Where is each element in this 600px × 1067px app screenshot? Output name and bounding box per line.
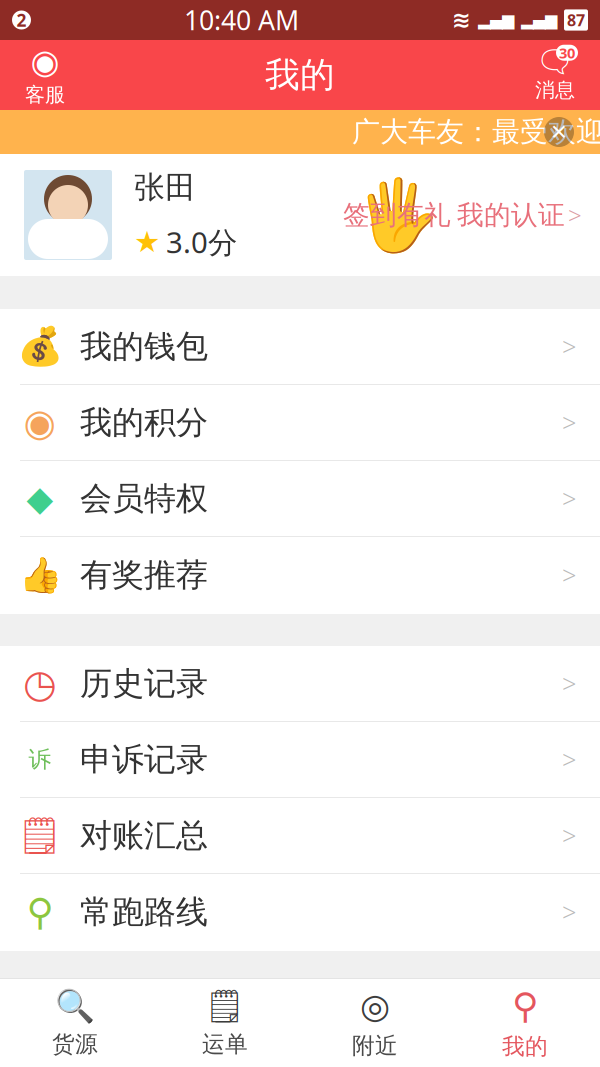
button[interactable]: 诉 [0, 722, 600, 798]
button[interactable]: 关闭 [544, 117, 574, 147]
staticText: 诉 [28, 746, 51, 773]
staticText: 对账汇总 [80, 816, 208, 855]
staticText: 附近 [352, 1032, 398, 1060]
staticText: ◆ [26, 479, 53, 518]
button[interactable]: 👍 [0, 537, 600, 614]
staticText: 💰 [17, 325, 63, 368]
staticText: ⚲ [512, 986, 538, 1026]
staticText: 🔍 [55, 988, 95, 1024]
button[interactable]: 💰 [0, 309, 600, 385]
staticText: 🖐 [354, 175, 440, 255]
staticText: 🗨 [535, 44, 574, 79]
staticText: 运单 [202, 1030, 248, 1058]
staticText: 历史记录 [80, 664, 208, 703]
staticText: ▂▄▆ [478, 11, 514, 29]
staticText: 客服 [25, 83, 65, 107]
staticText: ▂▄▆ [521, 11, 557, 29]
button[interactable]: 消息 [510, 40, 600, 110]
button[interactable]: 我的认证 [457, 170, 600, 260]
staticText: ◷ [23, 662, 57, 705]
button[interactable]: 🗒 [150, 979, 300, 1067]
staticText: ◉ [30, 43, 59, 81]
staticText: 消息 [535, 78, 575, 102]
staticText: ◉ [23, 401, 56, 444]
staticText: ✕ [550, 120, 568, 144]
staticText: ◎ [360, 986, 390, 1026]
staticText: > [562, 482, 576, 515]
staticText: 会员特权 [80, 479, 208, 518]
staticText: 我的积分 [80, 403, 208, 442]
staticText: 🗒 [204, 988, 245, 1024]
staticText: 我的 [502, 1032, 548, 1060]
button[interactable]: 🖐 [337, 170, 457, 260]
staticText: 常跑路线 [80, 892, 208, 932]
staticText: 有奖推荐 [80, 555, 208, 595]
staticText: 3.0分 [166, 222, 237, 261]
button[interactable]: ◉ [0, 385, 600, 461]
staticText: 87 [567, 9, 585, 31]
button[interactable]: ⚲ [0, 874, 600, 951]
staticText: > [562, 406, 576, 439]
staticText: 我的钱包 [80, 327, 208, 366]
staticText: 🗒 [17, 815, 63, 856]
staticText: 签到有礼 [343, 199, 451, 231]
staticText: 2 [16, 8, 26, 31]
button[interactable]: 客服 [0, 40, 90, 110]
staticText: > [562, 558, 576, 592]
staticText: 申诉记录 [80, 740, 208, 779]
staticText: 我的 [265, 54, 335, 96]
button[interactable]: 🗒 [0, 798, 600, 874]
button[interactable]: ◎ [300, 979, 450, 1067]
staticText: 广大车友：最受欢迎平台 [352, 115, 600, 149]
button[interactable]: ⚲ [450, 979, 600, 1067]
button[interactable]: 🔍 [0, 979, 150, 1067]
staticText: > [562, 895, 576, 929]
staticText: ★ [134, 225, 160, 258]
button[interactable]: ◆ [0, 461, 600, 537]
button[interactable]: 头像 [24, 170, 112, 260]
staticText: > [562, 819, 576, 852]
staticText: > [562, 667, 576, 700]
staticText: ≋ [452, 7, 471, 33]
staticText: 货源 [52, 1030, 98, 1058]
staticText: 10:40 AM [184, 2, 299, 38]
staticText: 30 [559, 43, 575, 62]
staticText: > [568, 199, 582, 231]
button[interactable]: ◷ [0, 646, 600, 722]
staticText: > [562, 330, 576, 363]
staticText: 👍 [18, 555, 61, 595]
staticText: 张田 [134, 169, 196, 206]
staticText: > [562, 743, 576, 776]
staticText: ⚲ [26, 891, 53, 933]
staticText: 我的认证 [457, 199, 565, 231]
